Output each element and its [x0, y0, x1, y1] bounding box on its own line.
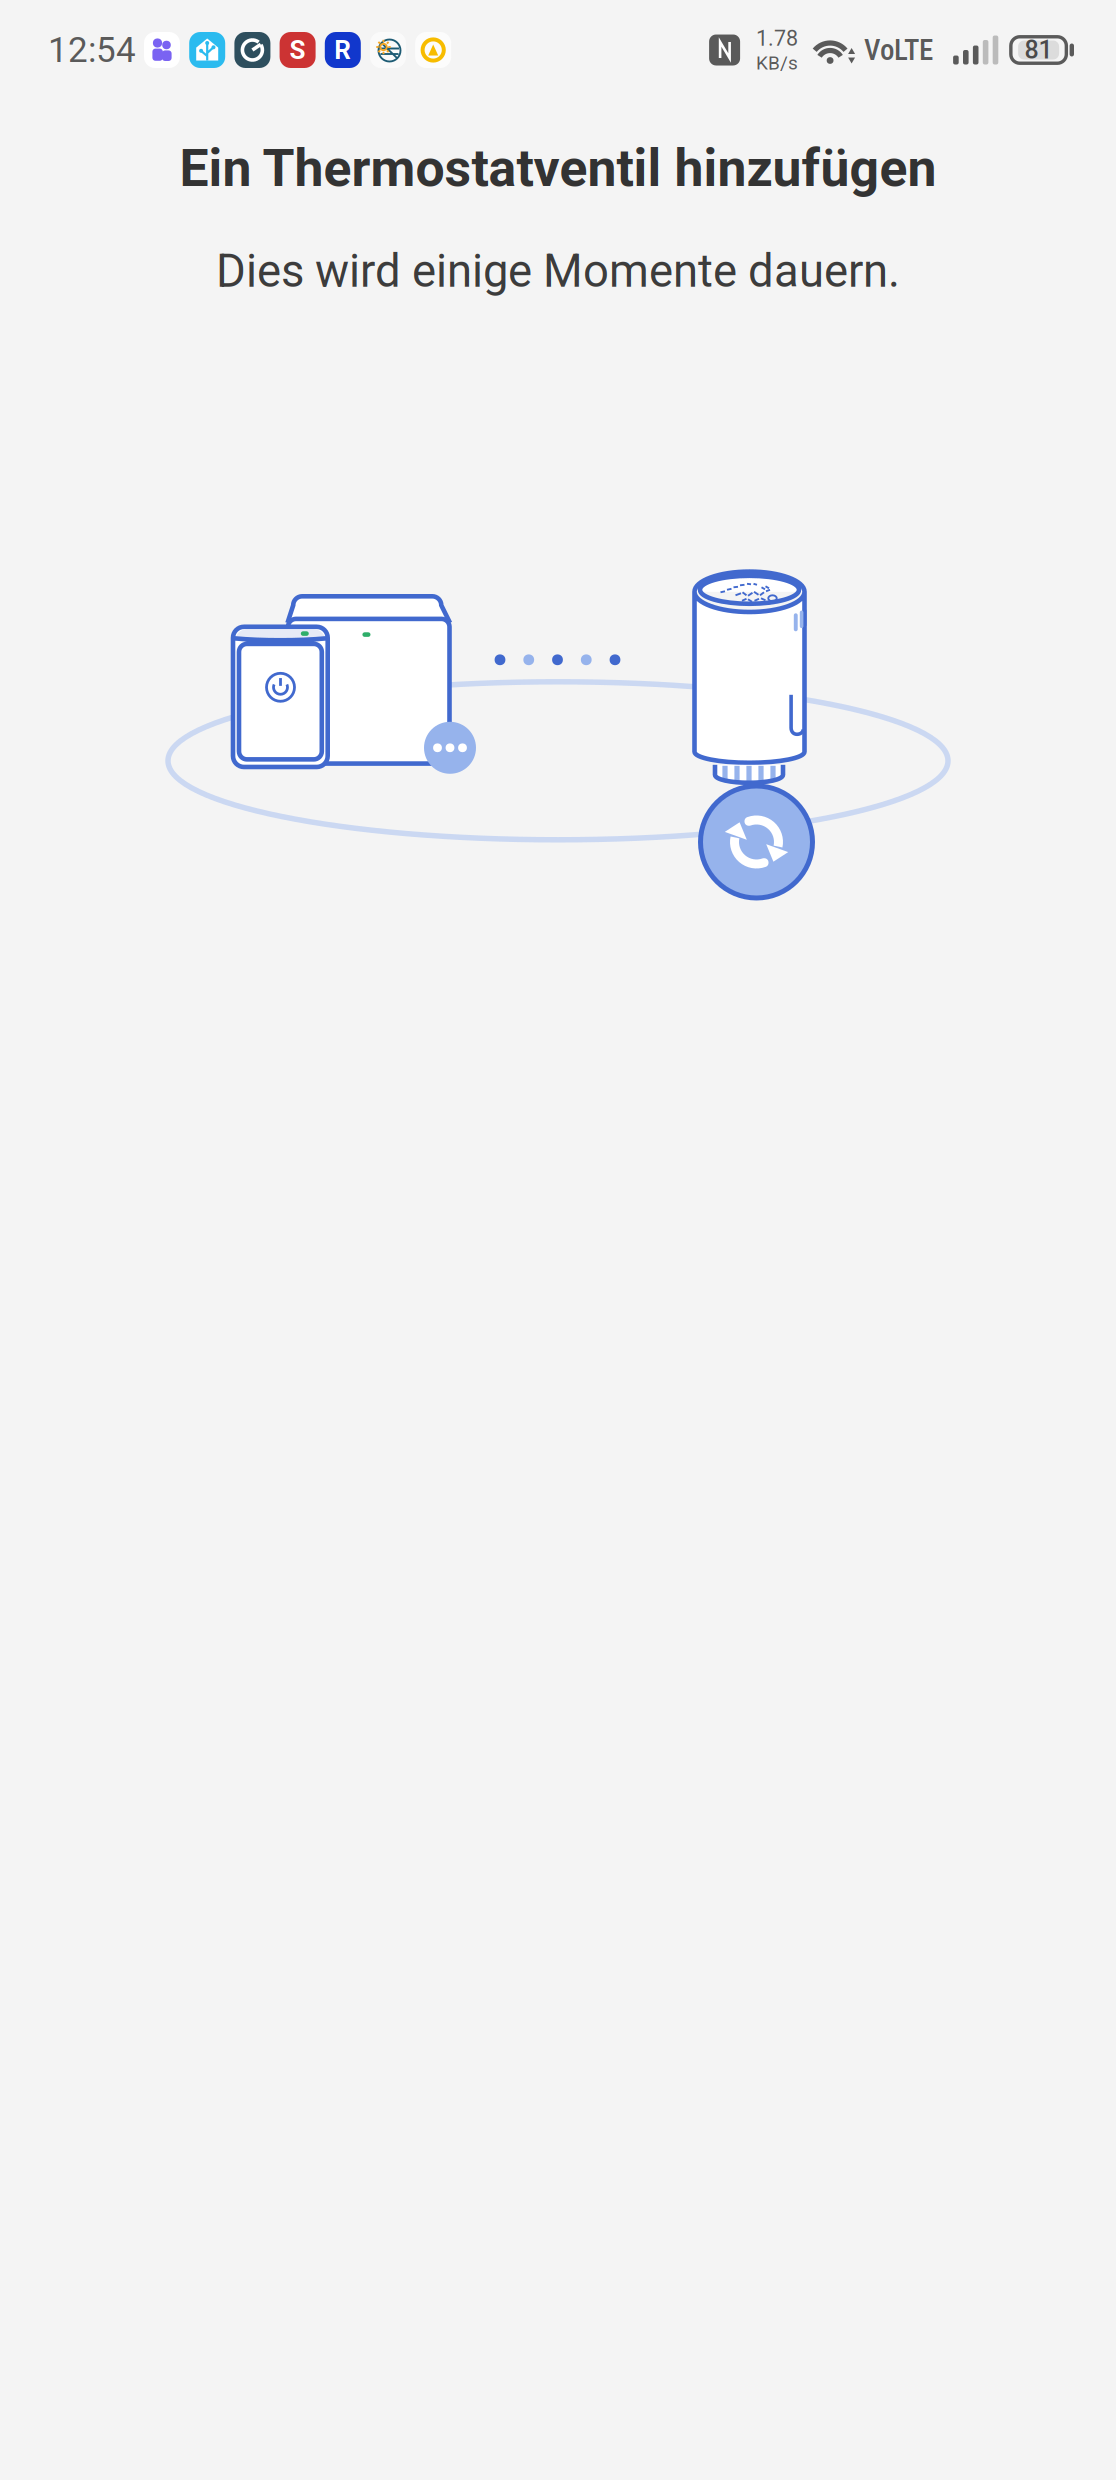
staticText: R — [334, 35, 351, 65]
staticText: 1.78 — [756, 26, 798, 51]
staticText: 12:54 — [48, 29, 136, 70]
staticText: S — [290, 35, 306, 65]
staticText: Dies wird einige Momente dauern. — [216, 245, 900, 298]
staticText: KB/s — [756, 52, 798, 74]
staticText: 81 — [1025, 35, 1053, 65]
staticText: VoLTE — [864, 33, 933, 67]
staticText: Ein Thermostatventil hinzufügen — [179, 138, 936, 199]
